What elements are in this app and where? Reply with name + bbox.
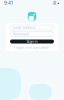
staticText: 9:41	[4, 0, 13, 6]
staticText: Password	[12, 32, 28, 36]
staticText: Email address	[12, 25, 35, 30]
staticText: ıll ▪	[53, 0, 60, 6]
staticText: Sign in	[26, 39, 37, 44]
button[interactable]: Forgot your password?	[10, 46, 54, 49]
button[interactable]: Sign in	[10, 39, 54, 43]
staticText: Forgot your password?	[14, 46, 50, 49]
button[interactable]: Email address	[10, 25, 54, 30]
button[interactable]: Password	[10, 31, 54, 36]
